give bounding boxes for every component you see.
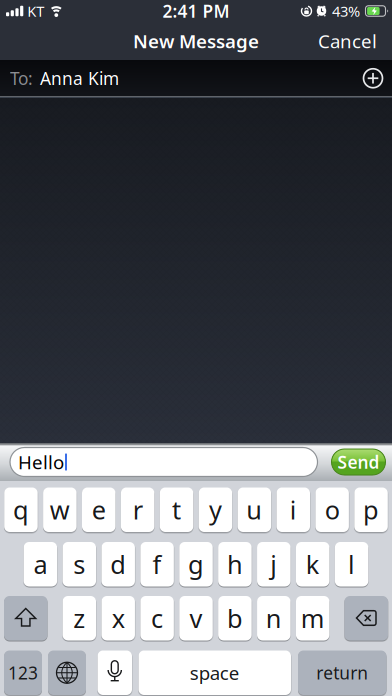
button[interactable]: k bbox=[296, 542, 329, 586]
staticText: v bbox=[189, 601, 202, 635]
staticText: g bbox=[188, 547, 204, 581]
staticText: p bbox=[363, 493, 379, 526]
button[interactable]: m bbox=[296, 596, 329, 640]
button[interactable]: q bbox=[4, 487, 38, 532]
staticText: To: bbox=[10, 67, 33, 90]
staticText: e bbox=[92, 493, 106, 526]
staticText: d bbox=[110, 547, 126, 581]
staticText: Cancel bbox=[318, 29, 377, 53]
button[interactable]: c bbox=[140, 596, 174, 640]
staticText: 123 bbox=[8, 661, 38, 684]
button[interactable]: d bbox=[101, 542, 135, 586]
staticText: y bbox=[209, 493, 222, 526]
button[interactable]: z bbox=[63, 596, 96, 640]
button[interactable]: Add Contact bbox=[356, 61, 390, 95]
button[interactable]: return bbox=[298, 650, 386, 695]
staticText: u bbox=[246, 493, 262, 526]
staticText: s bbox=[73, 547, 85, 581]
button[interactable]: y bbox=[199, 487, 232, 532]
staticText: o bbox=[325, 493, 340, 526]
staticText: x bbox=[112, 601, 125, 635]
button[interactable]: e bbox=[82, 487, 115, 532]
staticText: w bbox=[50, 493, 70, 526]
staticText: t bbox=[172, 493, 181, 526]
staticText: space bbox=[190, 660, 240, 685]
button[interactable]: l bbox=[335, 542, 368, 586]
button[interactable]: b bbox=[218, 596, 252, 640]
button[interactable]: Send bbox=[331, 449, 385, 475]
staticText: c bbox=[151, 601, 163, 635]
button[interactable]: Next keyboard bbox=[48, 650, 86, 695]
button[interactable]: g bbox=[179, 542, 213, 586]
staticText: r bbox=[133, 493, 143, 526]
staticText: m bbox=[301, 601, 325, 635]
staticText: f bbox=[153, 547, 162, 581]
staticText: q bbox=[13, 493, 29, 526]
staticText: b bbox=[227, 601, 243, 635]
button[interactable]: u bbox=[238, 487, 271, 532]
button[interactable]: Cancel bbox=[318, 29, 392, 53]
staticText: Hello bbox=[18, 450, 64, 474]
button[interactable]: r bbox=[121, 487, 154, 532]
button[interactable]: t bbox=[160, 487, 193, 532]
staticText: KT bbox=[27, 1, 44, 21]
staticText: z bbox=[73, 601, 85, 635]
staticText: return bbox=[316, 661, 368, 684]
button[interactable]: a bbox=[24, 542, 57, 586]
staticText: Send bbox=[337, 450, 379, 473]
staticText: j bbox=[270, 547, 277, 581]
staticText: 43% bbox=[332, 1, 360, 21]
button[interactable]: x bbox=[101, 596, 135, 640]
staticText: 2:41 PM bbox=[162, 0, 229, 22]
staticText: l bbox=[348, 547, 355, 581]
staticText: a bbox=[33, 547, 47, 581]
button[interactable]: h bbox=[218, 542, 252, 586]
button[interactable]: s bbox=[63, 542, 96, 586]
button[interactable]: j bbox=[257, 542, 291, 586]
button[interactable]: Shift bbox=[4, 596, 47, 640]
staticText: i bbox=[290, 493, 297, 526]
button[interactable]: n bbox=[257, 596, 291, 640]
staticText: Anna Kim bbox=[40, 67, 119, 90]
button[interactable]: Delete bbox=[344, 596, 388, 640]
button[interactable]: w bbox=[43, 487, 77, 532]
button[interactable]: o bbox=[315, 487, 349, 532]
button[interactable]: Dictate bbox=[97, 650, 132, 695]
button[interactable]: i bbox=[276, 487, 310, 532]
button[interactable]: p bbox=[354, 487, 388, 532]
staticText: k bbox=[306, 547, 320, 581]
button[interactable]: 123 bbox=[4, 650, 42, 695]
button[interactable]: space bbox=[138, 650, 291, 695]
staticText: New Message bbox=[133, 29, 259, 53]
staticText: h bbox=[227, 547, 243, 581]
staticText: n bbox=[266, 601, 282, 635]
button[interactable]: f bbox=[140, 542, 174, 586]
button[interactable]: v bbox=[179, 596, 213, 640]
